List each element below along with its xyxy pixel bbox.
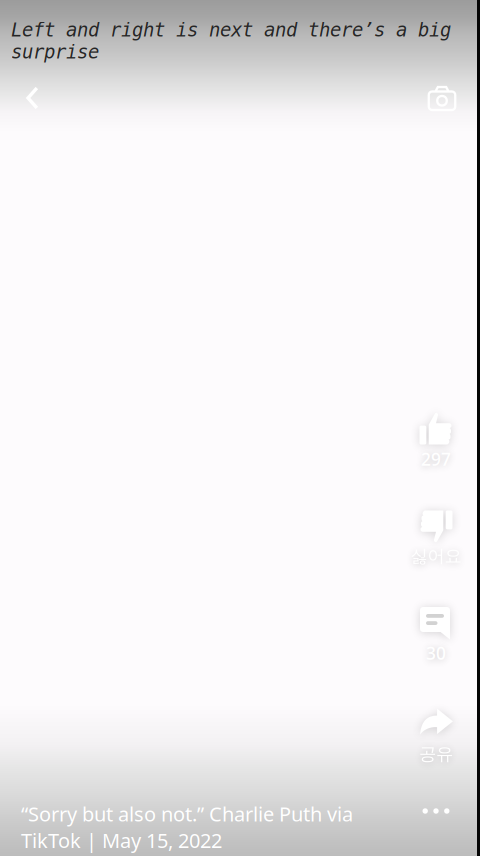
staticText: 297 bbox=[421, 447, 451, 470]
staticText: “Sorry but also not.” Charlie Puth via T… bbox=[21, 800, 353, 853]
button[interactable]: 30 bbox=[404, 604, 468, 664]
staticText: Left and right is next and there’s a big… bbox=[11, 19, 451, 63]
button[interactable]: More options bbox=[410, 793, 462, 829]
button[interactable]: Camera bbox=[418, 75, 466, 123]
staticText: 공유 bbox=[419, 743, 453, 765]
button[interactable]: 공유 bbox=[404, 705, 468, 765]
staticText: 30 bbox=[426, 641, 446, 664]
button[interactable]: 297 bbox=[404, 410, 468, 470]
staticText: 싫어요 bbox=[410, 545, 461, 567]
button[interactable]: Back bbox=[9, 74, 57, 122]
button[interactable]: 싫어요 bbox=[404, 507, 468, 567]
